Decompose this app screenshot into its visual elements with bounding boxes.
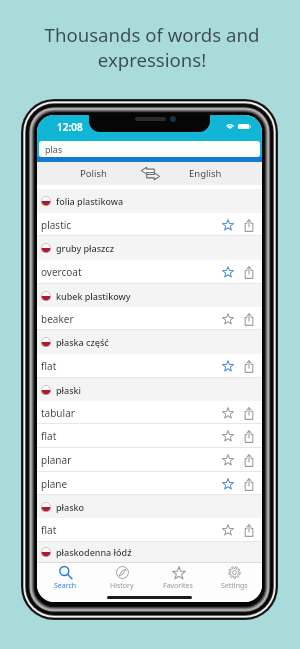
button[interactable]: Add to favorites [219, 310, 237, 328]
staticText: płaski [56, 384, 82, 396]
button[interactable]: Share [240, 427, 258, 445]
staticText: Polish [80, 167, 107, 180]
staticText: Thousands of words and expressions! [2, 22, 300, 72]
staticText: beaker [41, 312, 74, 326]
button[interactable]: English [149, 162, 262, 185]
staticText: Settings [221, 581, 248, 591]
button[interactable]: flat [37, 354, 262, 378]
button[interactable]: Search [37, 563, 94, 592]
button[interactable]: Add to favorites [219, 475, 237, 493]
button[interactable]: planar [37, 448, 262, 472]
staticText: flat [41, 359, 57, 373]
button[interactable]: Settings [206, 563, 262, 592]
staticText: planar [41, 453, 72, 467]
button[interactable]: Share [240, 475, 258, 493]
button[interactable]: plas [39, 141, 260, 157]
button[interactable]: Add to favorites [219, 451, 237, 469]
button[interactable]: flat [37, 424, 262, 448]
button[interactable]: Share [240, 357, 258, 375]
button[interactable]: płasko [37, 495, 262, 518]
button[interactable]: Add to favorites [219, 521, 237, 539]
button[interactable]: Add to favorites [219, 404, 237, 422]
staticText: tabular [41, 406, 75, 420]
button[interactable]: Share [240, 451, 258, 469]
button[interactable]: płaska część [37, 330, 262, 354]
button[interactable]: Add to favorites [219, 216, 237, 234]
staticText: flat [41, 429, 57, 443]
staticText: 12:08 [57, 120, 83, 134]
staticText: History [110, 581, 134, 591]
button[interactable]: overcoat [37, 260, 262, 284]
staticText: plastic [41, 218, 72, 232]
staticText: overcoat [41, 265, 82, 279]
staticText: Favorites [163, 581, 193, 591]
button[interactable]: Share [240, 404, 258, 422]
button[interactable]: Favorites [150, 563, 206, 592]
button[interactable]: plastic [37, 213, 262, 236]
button[interactable]: beaker [37, 307, 262, 330]
button[interactable]: Share [240, 310, 258, 328]
button[interactable]: Add to favorites [219, 427, 237, 445]
staticText: plane [41, 477, 68, 491]
staticText: płaska część [56, 336, 109, 348]
button[interactable]: Add to favorites [219, 357, 237, 375]
staticText: Search [54, 581, 77, 591]
staticText: folia plastikowa [56, 195, 124, 207]
button[interactable]: Add to favorites [219, 263, 237, 281]
staticText: płaskodenna łódź [56, 546, 132, 558]
button[interactable]: folia plastikowa [37, 189, 262, 213]
button[interactable]: gruby płaszcz [37, 236, 262, 260]
button[interactable]: kubek plastikowy [37, 284, 262, 307]
button[interactable]: Share [240, 521, 258, 539]
staticText: kubek plastikowy [56, 290, 131, 302]
button[interactable]: flat [37, 518, 262, 542]
staticText: plas [45, 143, 63, 155]
button[interactable]: Swap languages [135, 162, 165, 185]
button[interactable]: Share [240, 263, 258, 281]
button[interactable]: plane [37, 472, 262, 495]
staticText: płasko [56, 501, 85, 513]
button[interactable]: płaski [37, 378, 262, 401]
button[interactable]: tabular [37, 401, 262, 424]
staticText: gruby płaszcz [56, 242, 115, 254]
button[interactable]: History [94, 563, 150, 592]
staticText: English [189, 167, 222, 180]
button[interactable]: Polish [37, 162, 149, 185]
button[interactable]: Share [240, 216, 258, 234]
staticText: flat [41, 523, 57, 537]
button[interactable]: płaskodenna łódź [37, 542, 262, 562]
